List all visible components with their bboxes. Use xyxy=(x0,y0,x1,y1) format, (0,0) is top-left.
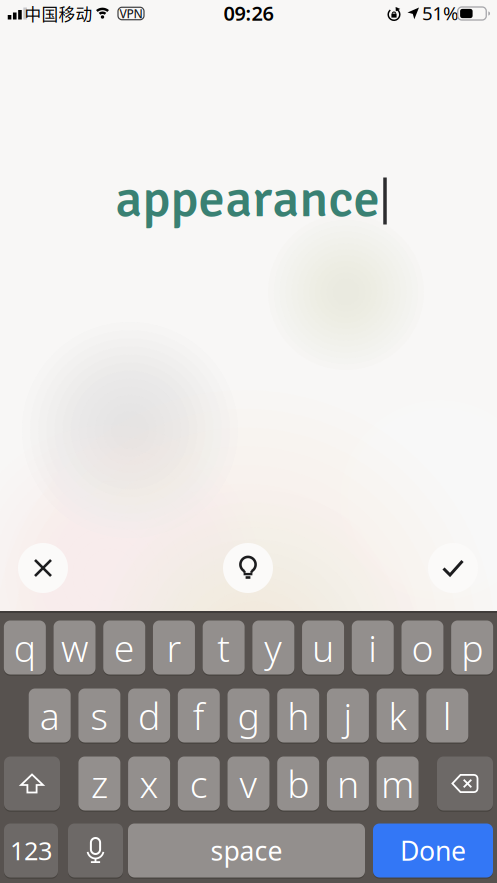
button[interactable]: p xyxy=(451,620,493,675)
button[interactable]: t xyxy=(203,620,245,675)
staticText: o xyxy=(411,623,433,672)
button[interactable]: Confirm xyxy=(428,543,478,593)
button[interactable]: l xyxy=(426,688,468,743)
staticText: b xyxy=(287,759,309,808)
staticText: l xyxy=(443,691,452,740)
staticText: g xyxy=(237,691,259,740)
button[interactable]: h xyxy=(277,688,319,743)
button[interactable]: Dictate xyxy=(68,823,123,878)
button[interactable]: e xyxy=(103,620,145,675)
staticText: s xyxy=(90,691,108,740)
button[interactable]: Cancel xyxy=(18,543,68,593)
staticText: w xyxy=(61,623,88,672)
button[interactable]: w xyxy=(54,620,96,675)
button[interactable]: z xyxy=(78,756,120,811)
button[interactable]: y xyxy=(252,620,294,675)
staticText: u xyxy=(312,623,334,672)
button[interactable]: i xyxy=(352,620,394,675)
button[interactable]: b xyxy=(277,756,319,811)
button[interactable]: m xyxy=(377,756,419,811)
staticText: c xyxy=(190,759,208,808)
button[interactable]: s xyxy=(78,688,120,743)
button[interactable]: k xyxy=(377,688,419,743)
button[interactable]: c xyxy=(178,756,220,811)
staticText: 中国移动 xyxy=(24,1,92,25)
staticText: f xyxy=(193,691,205,740)
staticText: space xyxy=(210,833,282,868)
staticText: e xyxy=(114,623,135,672)
button[interactable]: 123 xyxy=(4,823,58,878)
staticText: 51% xyxy=(422,1,459,25)
staticText: appearance xyxy=(115,166,380,232)
staticText: n xyxy=(337,759,359,808)
button[interactable]: r xyxy=(153,620,195,675)
button[interactable]: g xyxy=(227,688,269,743)
staticText: x xyxy=(140,759,159,808)
staticText: r xyxy=(166,623,181,672)
staticText: z xyxy=(91,759,108,808)
button[interactable]: Hint xyxy=(223,543,273,593)
button[interactable]: f xyxy=(178,688,220,743)
staticText: k xyxy=(389,691,407,740)
staticText: Done xyxy=(400,833,466,868)
button[interactable]: u xyxy=(302,620,344,675)
button[interactable]: space xyxy=(128,823,365,878)
staticText: y xyxy=(264,623,282,672)
button[interactable]: Done xyxy=(373,823,493,878)
button[interactable]: n xyxy=(327,756,369,811)
staticText: v xyxy=(239,759,257,808)
staticText: a xyxy=(40,691,60,740)
staticText: 09:26 xyxy=(223,0,273,26)
button[interactable]: v xyxy=(227,756,269,811)
staticText: t xyxy=(217,623,230,672)
button[interactable]: j xyxy=(327,688,369,743)
staticText: m xyxy=(381,759,414,808)
button[interactable]: Delete xyxy=(437,756,493,811)
button[interactable]: d xyxy=(128,688,170,743)
staticText: p xyxy=(461,623,483,672)
staticText: 123 xyxy=(10,834,52,867)
button[interactable]: a xyxy=(29,688,71,743)
button[interactable]: q xyxy=(4,620,46,675)
button[interactable]: Shift xyxy=(4,756,60,811)
staticText: i xyxy=(368,623,377,672)
staticText: q xyxy=(14,623,36,672)
button[interactable]: o xyxy=(401,620,443,675)
staticText: h xyxy=(287,691,309,740)
button[interactable]: x xyxy=(128,756,170,811)
staticText: VPN xyxy=(119,5,142,21)
staticText: j xyxy=(343,691,352,740)
staticText: d xyxy=(138,691,160,740)
